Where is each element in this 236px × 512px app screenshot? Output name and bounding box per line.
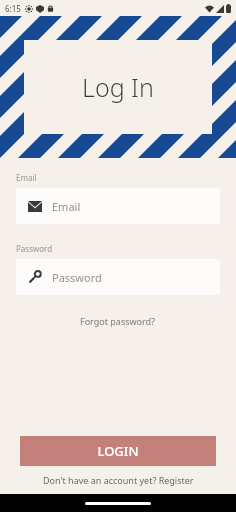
- staticText: 6:15: [5, 3, 21, 14]
- staticText: Log In: [82, 70, 154, 104]
- button[interactable]: Password: [16, 259, 220, 295]
- other: Password: [28, 270, 42, 284]
- staticText: Password: [52, 270, 102, 285]
- staticText: Email: [16, 172, 37, 183]
- staticText: Password: [16, 243, 53, 254]
- other: Email: [28, 201, 42, 212]
- staticText: Forgot password?: [80, 315, 156, 327]
- button[interactable]: Email: [16, 188, 220, 224]
- button[interactable]: Don't have an account yet? Register: [43, 472, 194, 488]
- button[interactable]: LOGIN: [20, 436, 216, 466]
- staticText: Email: [52, 199, 81, 214]
- button[interactable]: Forgot password?: [16, 311, 220, 331]
- staticText: LOGIN: [97, 442, 139, 460]
- staticText: Don't have an account yet? Register: [43, 474, 194, 486]
